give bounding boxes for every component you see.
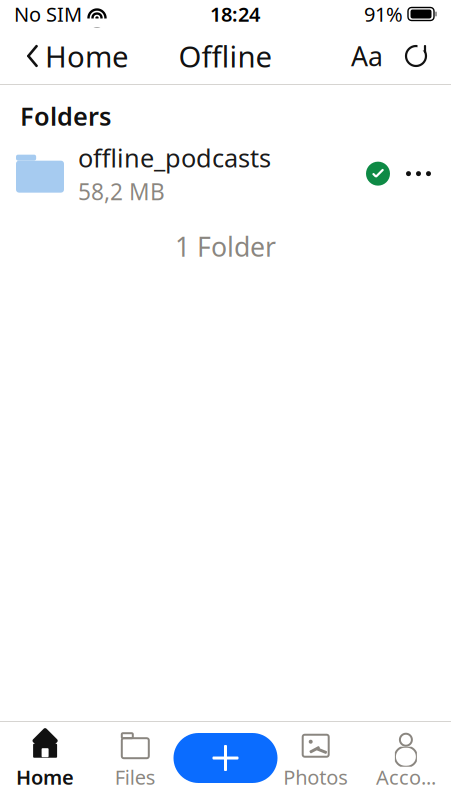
button[interactable]: Text size xyxy=(341,30,393,82)
staticText: Folders xyxy=(20,99,111,133)
button[interactable]: Home xyxy=(12,28,143,83)
staticText: 91% xyxy=(364,1,403,27)
staticText: Aa xyxy=(351,38,383,74)
button[interactable]: Photos xyxy=(271,726,361,796)
button[interactable]: More options xyxy=(390,157,447,190)
button[interactable]: offline_podcasts xyxy=(0,141,451,207)
staticText: Offline xyxy=(178,36,272,75)
staticText: Acco... xyxy=(376,764,436,790)
button[interactable]: Add xyxy=(173,733,277,783)
staticText: offline_podcasts xyxy=(78,141,271,174)
staticText: Files xyxy=(115,764,156,790)
staticText: Photos xyxy=(283,764,348,790)
button[interactable]: Files xyxy=(90,726,180,796)
button[interactable]: Acco... xyxy=(361,726,451,796)
staticText: No SIM xyxy=(14,1,82,27)
staticText: 18:24 xyxy=(210,1,260,27)
staticText: Home xyxy=(16,764,74,790)
staticText: 1 Folder xyxy=(175,229,276,264)
staticText: Home xyxy=(45,36,129,75)
button[interactable]: Refresh xyxy=(393,36,439,76)
button[interactable]: Home xyxy=(0,726,90,796)
staticText: 58,2 MB xyxy=(78,176,165,206)
